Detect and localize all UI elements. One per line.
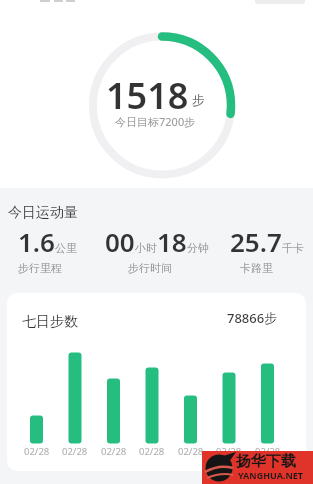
staticText: 02/28	[62, 445, 88, 457]
staticText: 七日步数	[22, 313, 78, 331]
staticText: 步行时间	[128, 261, 172, 275]
button[interactable]: 1.6	[18, 224, 77, 259]
staticText: 02/28	[216, 445, 242, 457]
staticText: 步	[192, 92, 205, 108]
staticText: 分钟	[187, 241, 209, 255]
staticText: 扬华下载	[236, 452, 296, 471]
staticText: 02/28	[101, 445, 127, 457]
staticText: 千卡	[282, 241, 304, 255]
staticText: 今日目标7200步	[115, 114, 196, 129]
staticText: 公里	[55, 241, 77, 255]
button[interactable]: 1518	[75, 71, 235, 113]
button[interactable]: 扬华下载	[202, 451, 313, 484]
staticText: 卡路里	[240, 261, 273, 275]
button[interactable]: 七日步数	[7, 293, 306, 471]
staticText: 02/28	[178, 445, 204, 457]
staticText: 1.6	[18, 224, 55, 259]
staticText: 1518	[106, 71, 189, 113]
staticText: 78866步	[227, 309, 278, 327]
staticText: 02/28	[255, 445, 281, 457]
staticText: YANGHUA.NET	[238, 469, 304, 481]
staticText: 今日运动量	[8, 204, 78, 222]
staticText: 18	[157, 224, 187, 259]
button[interactable]: 00	[105, 224, 209, 259]
staticText: 02/28	[24, 445, 50, 457]
staticText: 02/28	[139, 445, 165, 457]
staticText: 步行里程	[18, 261, 62, 275]
staticText: 小时	[135, 241, 157, 255]
staticText: 00	[105, 224, 135, 259]
button[interactable]: 25.7	[230, 224, 304, 259]
staticText: 25.7	[230, 224, 282, 259]
